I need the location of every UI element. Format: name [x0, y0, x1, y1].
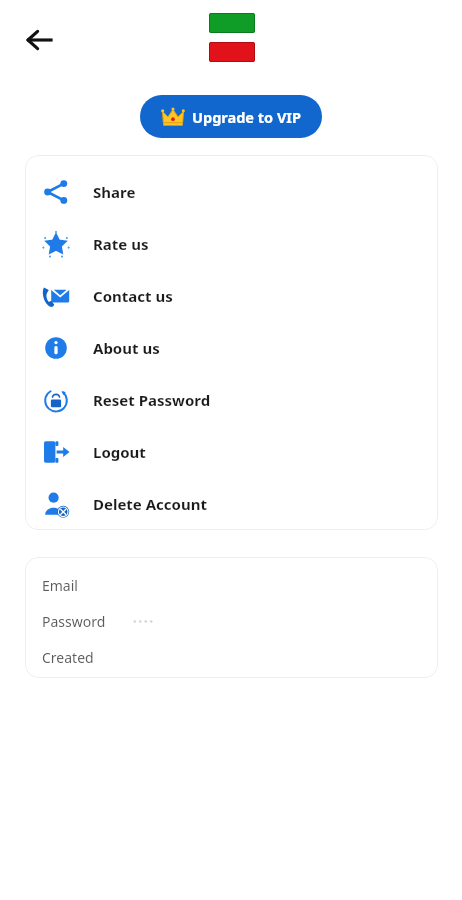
- staticText: Contact us: [93, 286, 173, 306]
- staticText: Email: [42, 576, 78, 593]
- button[interactable]: Contact us: [25, 270, 438, 322]
- staticText: Rate us: [93, 234, 149, 254]
- button[interactable]: Reset Password: [25, 374, 438, 426]
- staticText: Reset Password: [93, 390, 211, 410]
- button[interactable]: Logout: [25, 426, 438, 478]
- button[interactable]: About us: [25, 322, 438, 374]
- staticText: About us: [93, 338, 160, 358]
- staticText: Upgrade to VIP: [192, 107, 301, 127]
- button[interactable]: Rate us: [25, 218, 438, 270]
- button[interactable]: Back: [16, 16, 64, 64]
- staticText: Delete Account: [93, 494, 207, 514]
- staticText: Logout: [93, 442, 146, 462]
- staticText: Share: [93, 182, 136, 202]
- staticText: Password: [42, 612, 106, 629]
- staticText: Created: [42, 648, 94, 665]
- button[interactable]: Delete Account: [25, 478, 438, 530]
- button[interactable]: Share: [25, 166, 438, 218]
- button[interactable]: Upgrade to VIP: [140, 95, 322, 138]
